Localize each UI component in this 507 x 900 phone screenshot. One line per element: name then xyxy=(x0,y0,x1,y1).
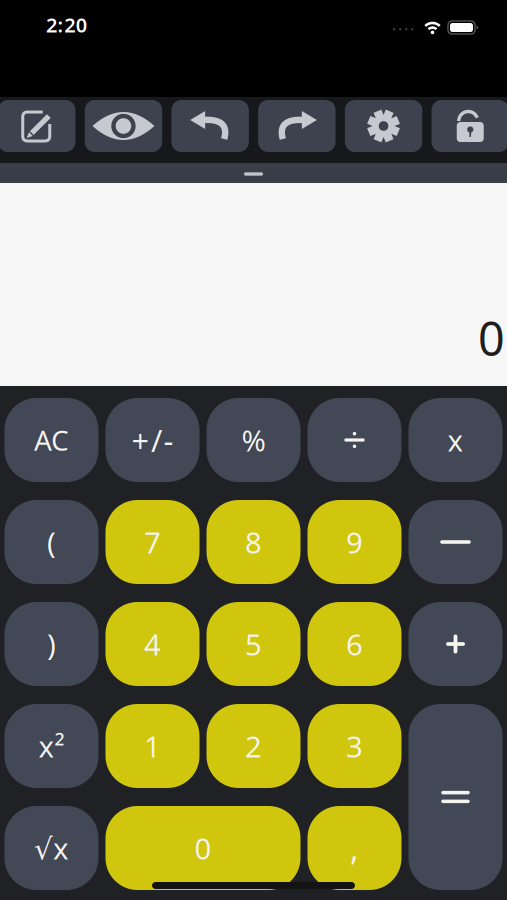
staticText: x xyxy=(447,420,463,459)
button[interactable]: ) xyxy=(4,602,98,686)
button[interactable]: Undo xyxy=(171,100,249,152)
staticText: x² xyxy=(38,726,64,765)
staticText: 6 xyxy=(346,624,363,663)
button[interactable]: 4 xyxy=(105,602,199,686)
button[interactable]: AC xyxy=(4,398,98,482)
button[interactable]: Unlock xyxy=(432,100,507,152)
button[interactable]: 5 xyxy=(206,602,300,686)
staticText: 9 xyxy=(346,522,363,561)
button[interactable]: +/- xyxy=(105,398,199,482)
staticText: , xyxy=(350,827,359,869)
button[interactable]: 3 xyxy=(307,704,401,788)
staticText: 7 xyxy=(144,522,161,561)
button[interactable]: % xyxy=(206,398,300,482)
button[interactable]: 2 xyxy=(206,704,300,788)
staticText: +/- xyxy=(131,420,173,460)
button[interactable]: x xyxy=(408,398,502,482)
staticText: 2 xyxy=(245,726,262,765)
button[interactable]: Divide xyxy=(307,398,401,482)
button[interactable]: x² xyxy=(4,704,98,788)
button[interactable]: Subtract xyxy=(408,500,502,584)
staticText: AC xyxy=(34,421,69,459)
button[interactable]: Show xyxy=(85,100,162,152)
staticText: 0 xyxy=(478,307,505,369)
button[interactable]: 8 xyxy=(206,500,300,584)
button[interactable]: 7 xyxy=(105,500,199,584)
button[interactable]: ( xyxy=(4,500,98,584)
button[interactable]: , xyxy=(307,806,401,890)
button[interactable]: √x xyxy=(4,806,98,890)
staticText: √x xyxy=(34,828,69,867)
button[interactable]: Equals xyxy=(408,704,502,890)
staticText: 0 xyxy=(194,828,211,867)
staticText: 5 xyxy=(245,624,262,663)
staticText: 1 xyxy=(144,726,161,765)
button[interactable]: Settings xyxy=(345,100,422,152)
button[interactable]: Redo xyxy=(258,100,336,152)
button[interactable]: 1 xyxy=(105,704,199,788)
button[interactable]: 0 xyxy=(105,806,300,890)
staticText: 3 xyxy=(346,726,363,765)
staticText: ( xyxy=(47,522,56,561)
button[interactable]: Add xyxy=(408,602,502,686)
staticText: 2:20 xyxy=(46,11,87,38)
button[interactable]: Edit xyxy=(0,100,75,152)
button[interactable]: 9 xyxy=(307,500,401,584)
button[interactable]: 6 xyxy=(307,602,401,686)
staticText: ) xyxy=(47,624,56,663)
staticText: 4 xyxy=(144,624,161,663)
staticText: 8 xyxy=(245,522,262,561)
staticText: % xyxy=(241,420,265,459)
